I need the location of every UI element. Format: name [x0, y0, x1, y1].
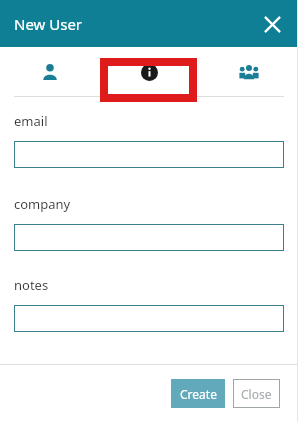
button[interactable]: Info tab [100, 47, 199, 97]
button[interactable]: Close [255, 7, 289, 41]
button[interactable] [14, 305, 284, 332]
button[interactable]: Create [171, 379, 225, 408]
staticText: Create [180, 386, 217, 402]
staticText: company [14, 195, 71, 213]
button[interactable]: Person tab [0, 47, 100, 97]
staticText: notes [14, 276, 49, 294]
button[interactable] [14, 224, 284, 251]
button[interactable]: Close [233, 379, 280, 408]
staticText: email [14, 112, 48, 130]
button[interactable]: Group tab [199, 47, 298, 97]
button[interactable] [14, 141, 284, 168]
staticText: Close [241, 386, 272, 402]
staticText: New User [14, 14, 83, 34]
